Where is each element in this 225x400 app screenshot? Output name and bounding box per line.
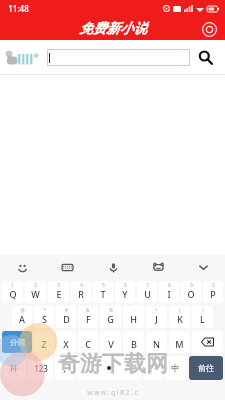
- button[interactable]: 前往: [189, 356, 223, 380]
- staticText: +: [155, 307, 158, 313]
- button[interactable]: Sticker: [146, 255, 170, 279]
- staticText: Q: [9, 288, 17, 300]
- staticText: 123: [34, 363, 48, 374]
- staticText: L: [200, 313, 205, 325]
- staticText: 分词: [10, 338, 25, 347]
- staticText: K: [177, 313, 183, 325]
- staticText: 11:48: [8, 3, 29, 14]
- staticText: W: [31, 288, 40, 300]
- button[interactable]: 分词: [2, 331, 32, 353]
- button[interactable]: Keyboard: [55, 255, 79, 279]
- button[interactable]: 7: [137, 281, 157, 303]
- button[interactable]: 9: [181, 281, 201, 303]
- button[interactable]: Hide keyboard: [191, 255, 215, 279]
- button[interactable]: *: [34, 306, 54, 328]
- staticText: 5: [102, 282, 105, 288]
- staticText: 中: [171, 363, 180, 374]
- button[interactable]: [47, 49, 190, 66]
- button[interactable]: 8: [159, 281, 179, 303]
- button[interactable]: %: [100, 306, 121, 328]
- staticText: V: [108, 338, 114, 350]
- button[interactable]: Z: [34, 331, 54, 353]
- button[interactable]: Emoji: [10, 255, 34, 279]
- staticText: U: [144, 288, 151, 300]
- staticText: H: [130, 313, 137, 325]
- staticText: 免费新小说: [79, 20, 147, 37]
- staticText: *: [43, 307, 46, 313]
- staticText: O: [187, 288, 195, 300]
- button[interactable]: 1: [2, 281, 23, 303]
- button[interactable]: C: [78, 331, 98, 353]
- staticText: P: [210, 288, 216, 300]
- staticText: 8: [168, 282, 171, 288]
- button[interactable]: More: [200, 20, 218, 38]
- staticText: #: [65, 307, 68, 313]
- button[interactable]: 3: [48, 281, 69, 303]
- staticText: C: [85, 338, 91, 350]
- staticText: 0: [212, 282, 215, 288]
- button[interactable]: 0: [203, 281, 223, 303]
- button[interactable]: +: [146, 306, 167, 328]
- staticText: w w w . q i 8 2 . c: [87, 388, 138, 397]
- button[interactable]: 6: [115, 281, 135, 303]
- button[interactable]: Search: [190, 40, 220, 75]
- button[interactable]: X: [56, 331, 76, 353]
- button[interactable]: (: [169, 306, 190, 328]
- staticText: J: [155, 313, 158, 325]
- button[interactable]: Backspace: [192, 331, 223, 353]
- button[interactable]: 5: [93, 281, 113, 303]
- button[interactable]: #: [56, 306, 76, 328]
- button[interactable]: N: [146, 331, 167, 353]
- button[interactable]: ): [192, 306, 213, 328]
- staticText: @: [20, 307, 25, 313]
- button[interactable]: 符: [2, 356, 26, 380]
- staticText: ): [202, 307, 204, 313]
- staticText: 1: [11, 282, 14, 288]
- staticText: ,: [63, 362, 66, 374]
- staticText: 前往: [198, 363, 214, 373]
- button[interactable]: M: [169, 331, 190, 353]
- staticText: D: [63, 313, 70, 325]
- button[interactable]: Voice: [101, 255, 125, 279]
- staticText: 9: [190, 282, 193, 288]
- button[interactable]: 中: [164, 356, 187, 380]
- button[interactable]: 4: [71, 281, 91, 303]
- button[interactable]: &: [78, 306, 98, 328]
- staticText: G: [107, 313, 114, 325]
- staticText: T: [100, 288, 106, 300]
- button[interactable]: ,: [55, 356, 74, 380]
- staticText: R: [78, 288, 84, 300]
- staticText: Y: [122, 288, 128, 300]
- button[interactable]: @: [12, 306, 32, 328]
- staticText: 3: [57, 282, 60, 288]
- staticText: 4: [80, 282, 83, 288]
- staticText: %: [109, 307, 113, 313]
- staticText: A: [19, 313, 25, 325]
- staticText: -: [133, 307, 135, 313]
- staticText: 。: [149, 363, 157, 373]
- staticText: F: [86, 313, 91, 325]
- staticText: S: [42, 313, 47, 325]
- staticText: E: [56, 288, 62, 300]
- button[interactable]: B: [123, 331, 144, 353]
- button[interactable]: 123: [28, 356, 53, 380]
- staticText: N: [153, 338, 160, 350]
- staticText: M: [175, 338, 184, 350]
- staticText: &: [86, 307, 90, 313]
- button[interactable]: -: [123, 306, 144, 328]
- staticText: B: [131, 338, 137, 350]
- staticText: 7: [146, 282, 149, 288]
- staticText: 奇游下载网: [58, 350, 168, 378]
- staticText: 符: [10, 363, 18, 373]
- staticText: 2: [34, 282, 37, 288]
- staticText: 6: [124, 282, 127, 288]
- staticText: X: [63, 338, 69, 350]
- staticText: Z: [41, 338, 47, 350]
- button[interactable]: Space: [76, 356, 141, 380]
- button[interactable]: 2: [25, 281, 46, 303]
- button[interactable]: V: [100, 331, 121, 353]
- staticText: I: [167, 288, 171, 300]
- staticText: (: [179, 307, 181, 313]
- button[interactable]: 。: [143, 356, 162, 380]
